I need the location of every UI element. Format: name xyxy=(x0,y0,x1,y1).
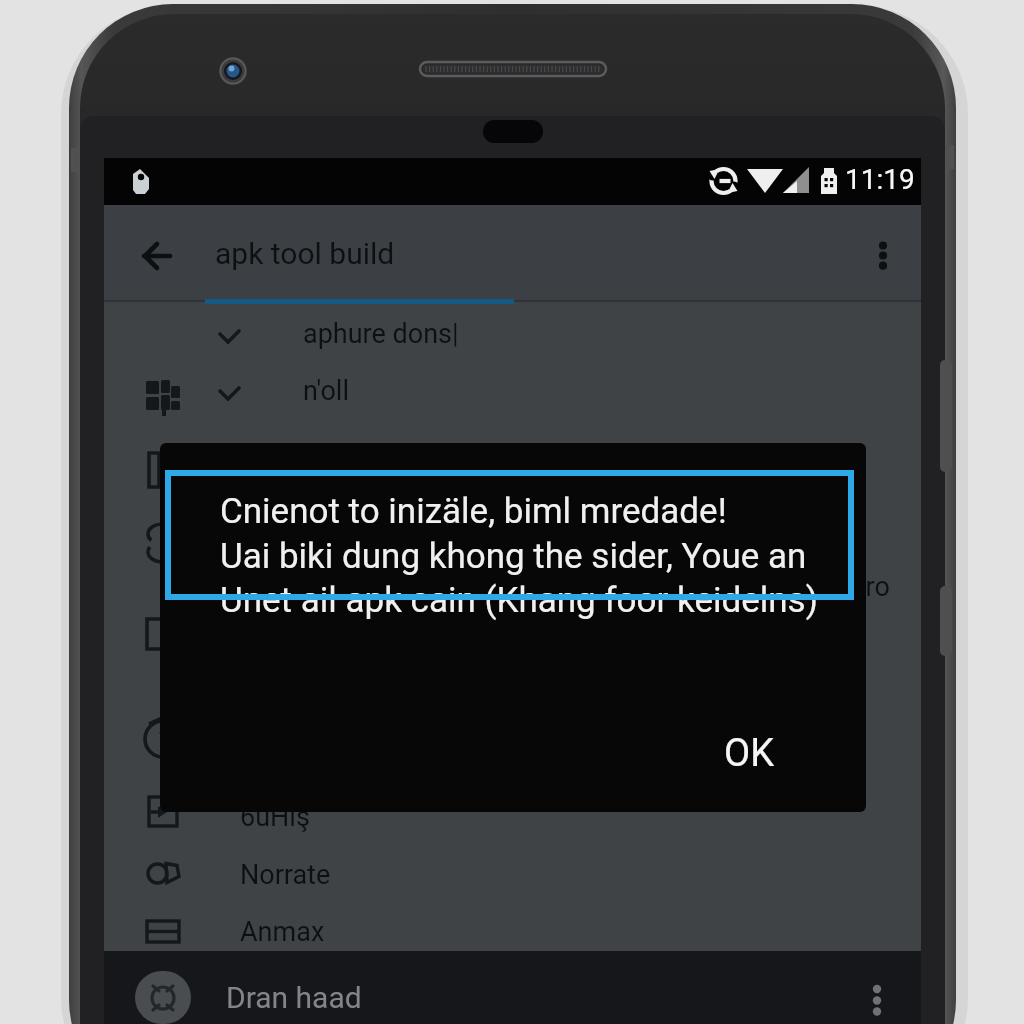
button[interactable]: More options xyxy=(859,232,907,280)
button[interactable]: aphure dons| xyxy=(104,310,921,367)
staticText: 6uHiş xyxy=(240,801,310,833)
button[interactable]: 6uHiş xyxy=(104,789,921,845)
staticText: aphure dons| xyxy=(303,318,459,350)
button[interactable]: OK xyxy=(708,719,790,788)
staticText: Dran haad xyxy=(226,980,362,1015)
button[interactable]: Anmax xyxy=(104,904,921,960)
staticText: OK xyxy=(724,731,774,776)
button[interactable]: Back xyxy=(130,232,184,286)
button[interactable]: Options xyxy=(854,975,900,1021)
staticText: n'oll xyxy=(303,375,349,407)
button[interactable]: Anunt ail akp siden gosteriro xyxy=(104,560,921,616)
button[interactable]: Norrate xyxy=(104,847,921,903)
button[interactable]: Dran haad xyxy=(104,951,921,1024)
button[interactable]: n'oll xyxy=(104,367,921,424)
staticText: Norrate xyxy=(240,859,331,891)
staticText: apk tool build xyxy=(215,236,395,271)
staticText: Anunt ail akp siden gosteriro xyxy=(548,571,890,603)
staticText: Anmax xyxy=(240,916,325,948)
staticText: Cnienot to inizäle, biml mredade! Uai bi… xyxy=(220,491,866,620)
staticText: 11:19 xyxy=(845,163,915,196)
